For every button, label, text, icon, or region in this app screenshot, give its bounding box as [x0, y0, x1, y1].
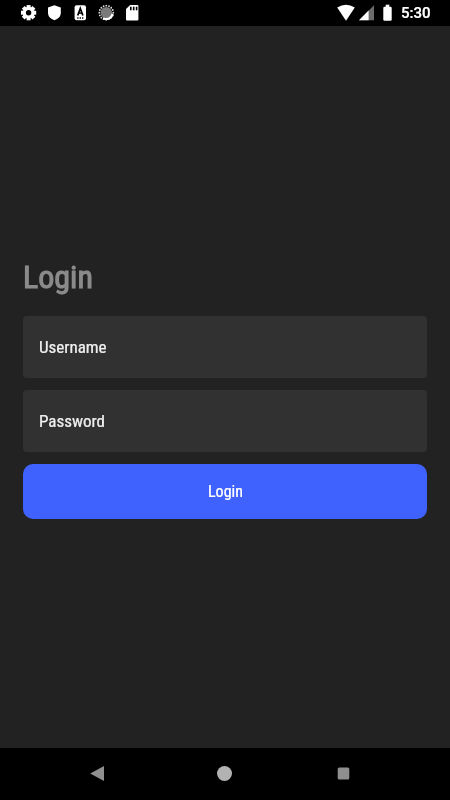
button[interactable]: Username	[23, 316, 427, 378]
button[interactable]	[150, 748, 300, 800]
staticText: Username	[39, 337, 107, 357]
staticText: 5:30	[401, 4, 431, 22]
button[interactable]	[0, 748, 150, 800]
staticText: Login	[208, 482, 243, 501]
button[interactable]: Password	[23, 390, 427, 452]
button[interactable]	[300, 748, 450, 800]
staticText: Password	[39, 411, 106, 431]
staticText: Login	[23, 258, 93, 296]
button[interactable]: Login	[23, 464, 427, 519]
